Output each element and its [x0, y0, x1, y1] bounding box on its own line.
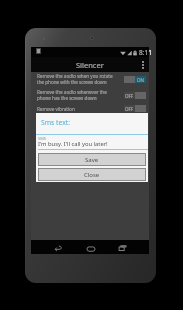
button[interactable]: More options	[140, 59, 146, 71]
staticText: Remove vibration	[37, 106, 124, 112]
staticText: Save	[85, 156, 99, 164]
staticText: 8:11	[139, 48, 152, 57]
staticText: OFF	[125, 106, 134, 112]
staticText: OFF	[125, 93, 134, 99]
staticText: Silencer	[76, 60, 104, 70]
staticText: I'm busy. I'll call you later!	[38, 140, 108, 148]
button[interactable]: Back	[51, 241, 64, 254]
staticText: Remove the audio whenever the phone has …	[37, 89, 124, 102]
button[interactable]: Save	[38, 153, 146, 166]
button[interactable]: Recent apps	[116, 241, 129, 254]
button[interactable]: Remove vibration	[31, 103, 149, 114]
staticText: Sms text:	[41, 118, 71, 127]
button[interactable]: Remove the audio when you rotate the pho…	[31, 71, 149, 87]
staticText: ON	[137, 77, 144, 83]
button[interactable]: Remove the audio whenever the phone has …	[31, 87, 149, 103]
button[interactable]: Close	[38, 168, 146, 181]
staticText: Remove the audio when you rotate the pho…	[37, 73, 124, 86]
staticText: Close	[84, 171, 100, 179]
staticText: SMS	[38, 136, 47, 141]
button[interactable]: Home	[84, 241, 97, 254]
